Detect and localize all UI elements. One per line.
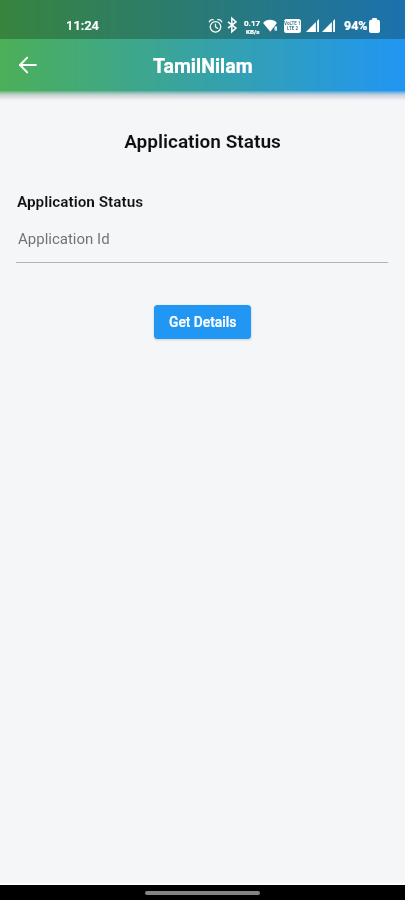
staticText: Get Details — [169, 314, 237, 330]
staticText: Application Id — [18, 230, 110, 248]
staticText: LTE 2 — [287, 26, 299, 31]
button[interactable]: Get Details — [154, 305, 251, 339]
button[interactable]: Back — [3, 41, 51, 89]
staticText: 0.17 — [244, 19, 261, 28]
staticText: Application Status — [0, 130, 405, 152]
staticText: Application Status — [17, 193, 144, 211]
staticText: 11:24 — [66, 18, 100, 33]
staticText: 94% — [344, 18, 368, 33]
staticText: TamilNilam — [153, 55, 253, 78]
staticText: KB/s — [246, 28, 260, 35]
staticText: VoLTE 1 — [284, 21, 301, 26]
